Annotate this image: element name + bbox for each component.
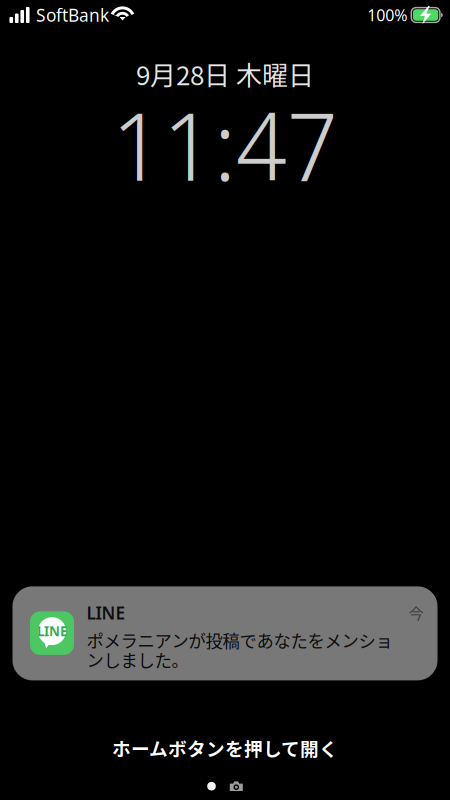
staticText: LINE <box>86 601 125 624</box>
staticText: SoftBank <box>36 3 109 26</box>
staticText: 11:47 <box>112 80 338 208</box>
button[interactable]: LINE <box>12 586 437 680</box>
button[interactable]: ホームボタンを押して開く <box>112 734 338 761</box>
button[interactable]: Camera <box>230 781 243 791</box>
staticText: 100% <box>367 4 407 26</box>
staticText: 9月28日 木曜日 <box>136 55 314 93</box>
staticText: 今 <box>408 601 423 624</box>
staticText: ポメラニアンが投稿であなたをメンションしました。 <box>86 627 392 672</box>
staticText: ホームボタンを押して開く <box>112 734 338 761</box>
staticText: LINE <box>37 622 67 640</box>
